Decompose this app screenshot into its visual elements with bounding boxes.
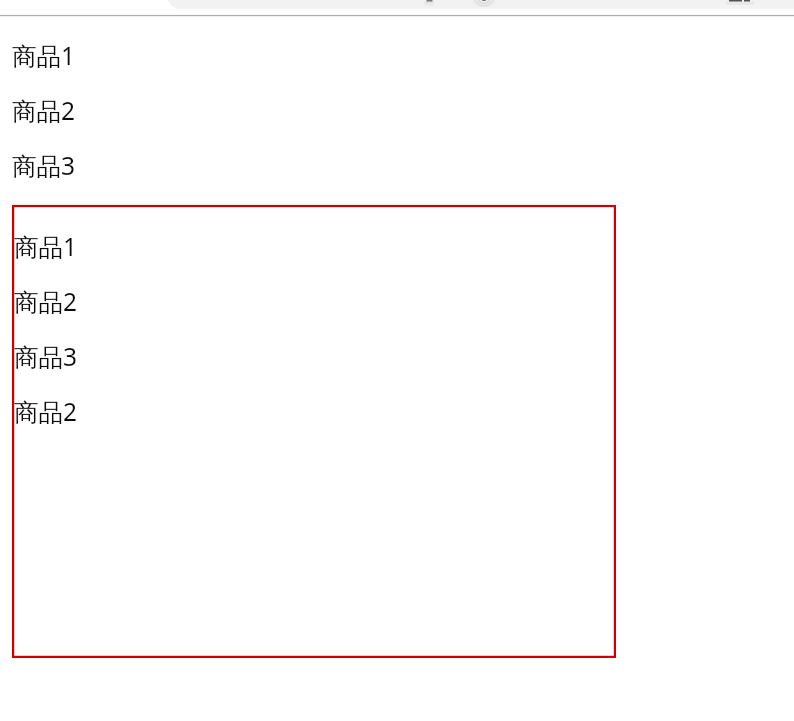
button[interactable]: 商品1	[12, 39, 76, 72]
button[interactable]: 商品3	[12, 149, 76, 182]
button[interactable]: 商品3	[14, 340, 78, 373]
button[interactable]: 商品1	[14, 230, 78, 263]
staticText: 商品2	[14, 395, 78, 428]
button[interactable]: 商品2	[14, 285, 78, 318]
staticText: 商品1	[14, 230, 78, 263]
other: Browser toolbar	[0, 0, 794, 6]
staticText: 商品3	[12, 149, 76, 182]
staticText: 商品3	[14, 340, 78, 373]
button[interactable]: 商品2	[12, 94, 76, 127]
staticText: 商品2	[14, 285, 78, 318]
staticText: 商品1	[12, 39, 76, 72]
button[interactable]: 商品2	[14, 395, 78, 428]
staticText: 商品2	[12, 94, 76, 127]
